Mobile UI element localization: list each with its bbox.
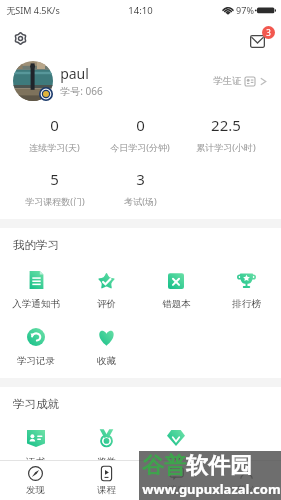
button[interactable]: 发现 xyxy=(0,461,71,500)
button[interactable]: 课程 xyxy=(71,461,141,500)
staticText: 奖学 xyxy=(97,456,116,468)
staticText: 积分 xyxy=(167,456,186,468)
button[interactable]: 学习记录 xyxy=(0,327,71,367)
staticText: 22.5 xyxy=(211,115,241,135)
button[interactable]: 评价 xyxy=(71,270,141,310)
button[interactable]: 5 xyxy=(12,169,97,207)
button[interactable]: 奖学 xyxy=(71,428,141,468)
staticText: paul xyxy=(60,64,89,83)
staticText: 我的 xyxy=(237,484,256,496)
button[interactable]: 消息 xyxy=(141,461,211,500)
staticText: 3 xyxy=(136,169,145,189)
button[interactable]: 22.5 xyxy=(183,115,269,153)
button[interactable]: 错题本 xyxy=(141,270,211,310)
staticText: 5 xyxy=(50,169,59,189)
staticText: 学生证 xyxy=(213,75,242,87)
staticText: 发现 xyxy=(26,484,45,496)
button[interactable]: 0 xyxy=(12,115,97,153)
staticText: 0 xyxy=(136,115,145,135)
button[interactable]: 收藏 xyxy=(71,327,141,367)
button[interactable]: 排行榜 xyxy=(211,270,281,310)
staticText: 考试(场) xyxy=(124,195,157,207)
staticText: 错题本 xyxy=(162,298,191,310)
button[interactable]: 3 xyxy=(97,169,183,207)
button[interactable]: 证书 xyxy=(0,428,71,468)
button[interactable]: 积分 xyxy=(141,428,211,468)
staticText: 我的学习 xyxy=(13,238,59,252)
button[interactable]: paul xyxy=(0,56,281,106)
staticText: www.gupuxlazal.com xyxy=(142,480,281,498)
staticText: 证书 xyxy=(26,456,45,468)
staticText: 收藏 xyxy=(97,355,116,367)
staticText: 连续学习(天) xyxy=(29,141,80,153)
staticText: 学习课程数(门) xyxy=(25,195,85,207)
staticText: 学号: 066 xyxy=(60,84,103,98)
staticText: 软件园 xyxy=(186,452,252,480)
button[interactable]: Settings xyxy=(7,25,33,51)
staticText: 入学通知书 xyxy=(12,298,60,310)
button[interactable]: 0 xyxy=(97,115,183,153)
button[interactable]: Messages xyxy=(249,25,275,51)
staticText: 消息 xyxy=(167,484,186,496)
staticText: 97% xyxy=(236,4,254,16)
staticText: 3 xyxy=(266,27,271,38)
staticText: 学习成就 xyxy=(13,397,59,411)
staticText: 无SIM 4.5K/s xyxy=(6,4,60,16)
button[interactable]: 入学通知书 xyxy=(0,270,71,310)
button[interactable]: 我的 xyxy=(211,461,281,500)
staticText: 评价 xyxy=(97,298,116,310)
staticText: 累计学习(小时) xyxy=(196,141,256,153)
staticText: 学习记录 xyxy=(17,355,55,367)
staticText: 排行榜 xyxy=(232,298,261,310)
staticText: 0 xyxy=(50,115,59,135)
staticText: 谷普 xyxy=(142,452,186,480)
staticText: 课程 xyxy=(97,484,116,496)
staticText: 今日学习(分钟) xyxy=(110,141,170,153)
staticText: 14:10 xyxy=(128,4,153,17)
